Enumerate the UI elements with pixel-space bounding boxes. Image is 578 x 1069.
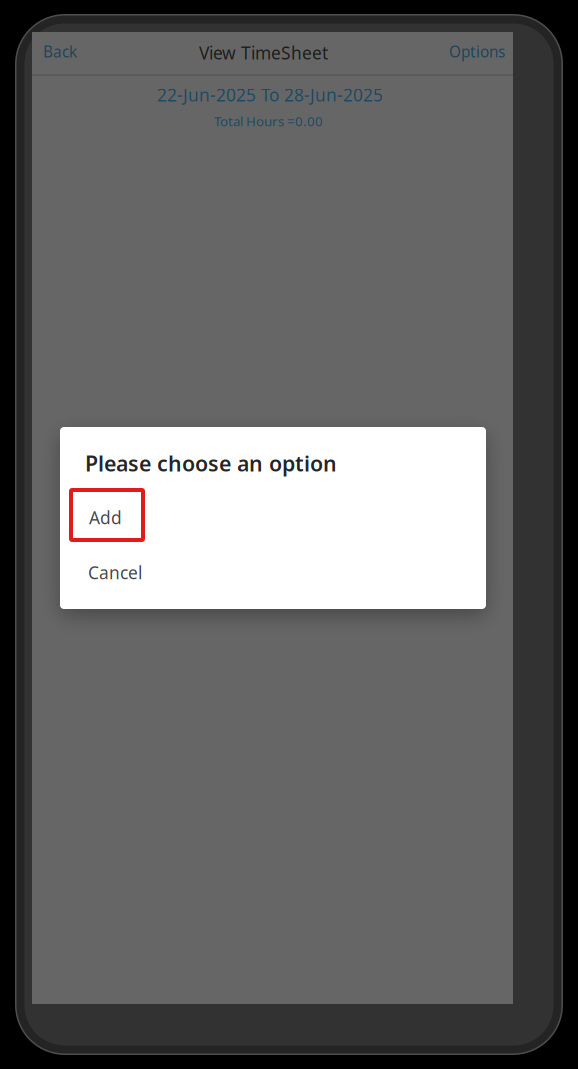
staticText: Cancel [88, 561, 142, 584]
staticText: View TimeSheet [199, 41, 328, 65]
staticText: Total Hours =0.00 [214, 112, 323, 130]
staticText: Add [89, 506, 122, 529]
button[interactable]: Options [441, 31, 513, 72]
staticText: 22-Jun-2025 To 28-Jun-2025 [157, 83, 383, 107]
staticText: Please choose an option [85, 449, 337, 477]
button[interactable]: Cancel [60, 545, 486, 600]
button[interactable]: Add [60, 490, 486, 545]
staticText: Options [449, 41, 505, 62]
button[interactable]: Back [35, 31, 85, 72]
staticText: Back [43, 41, 77, 62]
